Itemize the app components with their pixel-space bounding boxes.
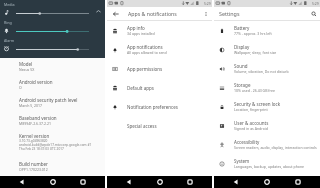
- button[interactable]: Recent apps: [284, 176, 320, 188]
- staticText: March 5, 2017: [19, 103, 43, 108]
- staticText: Storage: [234, 82, 251, 88]
- button[interactable]: App notifications: [107, 40, 212, 59]
- button[interactable]: App info: [107, 21, 212, 40]
- staticText: 3.10.73-g04963820 android-build@wpde17.m…: [19, 139, 92, 151]
- button[interactable]: Home: [251, 176, 283, 188]
- staticText: OPP1.170223.012: [19, 167, 48, 172]
- button[interactable]: More options: [199, 7, 212, 20]
- button[interactable]: Display: [214, 40, 320, 59]
- staticText: Default apps: [127, 85, 154, 91]
- button[interactable]: Kernel version: [0, 130, 105, 158]
- staticText: Special access: [127, 123, 157, 129]
- button[interactable]: Model: [0, 58, 105, 76]
- staticText: 77% - approx. 3 hrs left: [234, 31, 272, 36]
- staticText: 10% used - 26.43 GB free: [234, 88, 275, 93]
- button[interactable]: Storage: [214, 78, 320, 97]
- staticText: Apps & notifications: [128, 10, 177, 17]
- staticText: Nexus 5X: [19, 67, 35, 72]
- staticText: Wallpaper, sleep, font size: [234, 50, 277, 55]
- button[interactable]: Expand volume controls: [95, 8, 102, 15]
- staticText: Volume, vibration, Do not disturb: [234, 69, 289, 74]
- button[interactable]: Default apps: [107, 78, 212, 97]
- staticText: Build number: [19, 161, 48, 167]
- button[interactable]: Back: [107, 176, 143, 188]
- staticText: Sound: [234, 63, 248, 69]
- staticText: Settings: [219, 10, 240, 17]
- staticText: Kernel version: [19, 133, 50, 139]
- button[interactable]: Home: [144, 176, 176, 188]
- staticText: Screen readers, audio, display, interact…: [234, 145, 317, 150]
- button[interactable]: Accessibility: [214, 135, 320, 154]
- button[interactable]: Recent apps: [176, 176, 212, 188]
- staticText: Signed in as Android: [234, 126, 268, 131]
- staticText: App notifications: [127, 44, 163, 50]
- staticText: Baseband version: [19, 115, 57, 121]
- staticText: Battery: [234, 25, 250, 31]
- button[interactable]: Battery: [214, 21, 320, 40]
- staticText: 5:29: [204, 1, 211, 6]
- staticText: 34 apps installed: [127, 31, 155, 36]
- staticText: App info: [127, 25, 145, 31]
- staticText: All apps allowed to send: [127, 50, 167, 55]
- staticText: Ring: [4, 20, 12, 25]
- staticText: Alarm: [4, 38, 15, 43]
- staticText: Notification preferences: [127, 104, 178, 110]
- button[interactable]: Android security patch level: [0, 94, 105, 112]
- staticText: Android version: [19, 79, 53, 85]
- button[interactable]: System: [214, 154, 320, 173]
- button[interactable]: Home: [37, 176, 69, 188]
- staticText: Languages, backup, updates, about phone: [234, 164, 305, 169]
- button[interactable]: Recent apps: [69, 176, 105, 188]
- staticText: Accessibility: [234, 139, 260, 145]
- staticText: Display: [234, 44, 250, 50]
- button[interactable]: Back: [214, 176, 250, 188]
- button[interactable]: Android version: [0, 76, 105, 94]
- staticText: App permissions: [127, 66, 163, 72]
- button[interactable]: Notification preferences: [107, 97, 212, 116]
- staticText: Model: [19, 61, 33, 67]
- button[interactable]: Sound: [214, 59, 320, 78]
- button[interactable]: User & accounts: [214, 116, 320, 135]
- staticText: Security & screen lock: [234, 101, 281, 107]
- button[interactable]: Navigate up: [109, 7, 122, 20]
- staticText: User & accounts: [234, 120, 269, 126]
- staticText: System: [234, 158, 250, 164]
- button[interactable]: Special access: [107, 116, 212, 135]
- staticText: 5:29: [312, 1, 319, 6]
- button[interactable]: App permissions: [107, 59, 212, 78]
- staticText: O: [19, 85, 22, 90]
- button[interactable]: Media: [0, 2, 105, 18]
- button[interactable]: Ring: [0, 20, 105, 36]
- staticText: Android security patch level: [19, 97, 78, 103]
- button[interactable]: Search settings: [307, 7, 320, 20]
- button[interactable]: Build number: [0, 158, 105, 176]
- staticText: Media: [4, 2, 15, 7]
- button[interactable]: Back: [0, 176, 36, 188]
- staticText: Location, fingerprint: [234, 107, 268, 112]
- button[interactable]: Security & screen lock: [214, 97, 320, 116]
- button[interactable]: Baseband version: [0, 112, 105, 130]
- button[interactable]: Alarm: [0, 38, 105, 54]
- staticText: M8994F-2.6.37.2.21: [19, 121, 51, 126]
